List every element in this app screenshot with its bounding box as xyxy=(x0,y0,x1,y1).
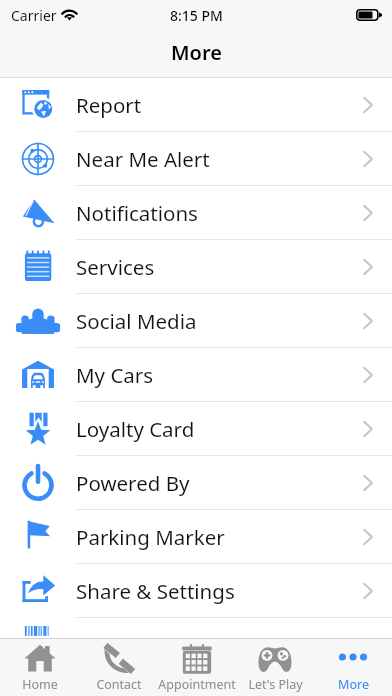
staticText: Appointment xyxy=(158,676,236,693)
staticText: More xyxy=(338,676,369,693)
button[interactable]: Social Media xyxy=(0,294,392,348)
button[interactable]: More xyxy=(314,639,392,696)
staticText: Powered By xyxy=(76,469,190,497)
button[interactable]: Notifications xyxy=(0,186,392,240)
staticText: Loyalty Card xyxy=(76,415,195,443)
staticText: Social Media xyxy=(76,307,197,335)
button[interactable] xyxy=(0,618,392,638)
staticText: Report xyxy=(76,91,142,119)
staticText: Near Me Alert xyxy=(76,145,210,173)
button[interactable]: Home xyxy=(0,639,79,696)
button[interactable]: Parking Marker xyxy=(0,510,392,564)
staticText: 8:15 PM xyxy=(170,6,223,25)
button[interactable]: Powered By xyxy=(0,456,392,510)
staticText: My Cars xyxy=(76,361,154,389)
staticText: Contact xyxy=(96,676,142,693)
staticText: Home xyxy=(22,676,58,693)
staticText: Carrier xyxy=(11,6,57,25)
button[interactable]: Appointment xyxy=(158,639,236,696)
staticText: Let's Play xyxy=(248,676,303,693)
staticText: Parking Marker xyxy=(76,523,225,551)
button[interactable]: Let's Play xyxy=(236,639,314,696)
button[interactable]: Report xyxy=(0,78,392,132)
staticText: More xyxy=(171,39,222,66)
button[interactable]: My Cars xyxy=(0,348,392,402)
button[interactable]: Services xyxy=(0,240,392,294)
staticText: Notifications xyxy=(76,199,198,227)
staticText: Services xyxy=(76,253,155,281)
staticText: Share & Settings xyxy=(76,577,235,605)
button[interactable]: Contact xyxy=(79,639,158,696)
button[interactable]: Near Me Alert xyxy=(0,132,392,186)
button[interactable]: Loyalty Card xyxy=(0,402,392,456)
button[interactable]: Share & Settings xyxy=(0,564,392,618)
